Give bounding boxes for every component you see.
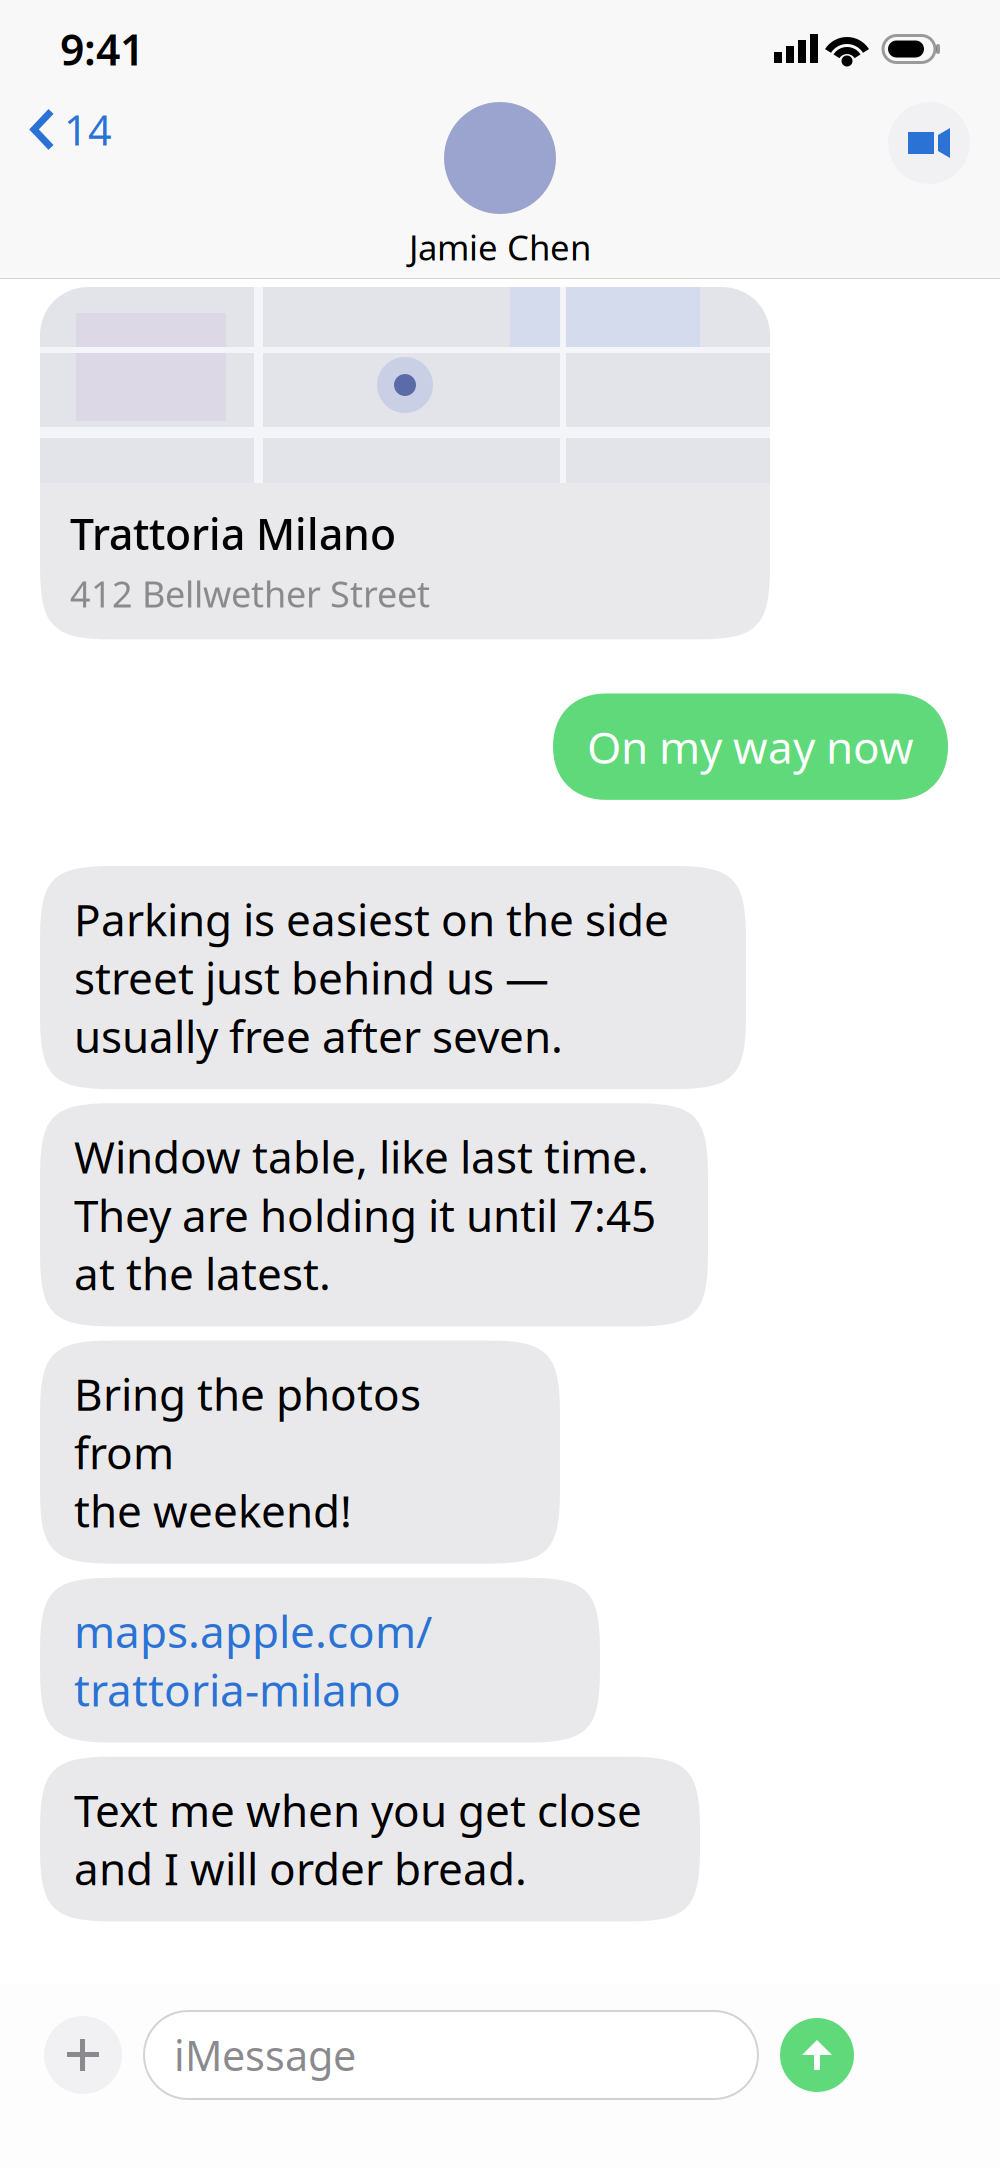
button[interactable]: Add attachment	[44, 2016, 122, 2094]
button[interactable]: FaceTime	[800, 102, 970, 274]
staticText: On my way now	[587, 717, 914, 776]
staticText: Jamie Chen	[409, 224, 591, 270]
staticText: maps.apple.com/ trattoria-milano	[74, 1602, 432, 1719]
staticText: Parking is easiest on the side street ju…	[74, 890, 669, 1065]
staticText: Text me when you get close and I will or…	[74, 1781, 642, 1897]
staticText: 412 Bellwether Street	[70, 570, 430, 617]
staticText: Window table, like last time. They are h…	[74, 1127, 656, 1302]
staticText: 9:41	[60, 21, 144, 77]
staticText: 14	[64, 102, 112, 157]
staticText: Bring the photos from the weekend!	[74, 1364, 421, 1540]
button[interactable]: Send	[780, 2018, 854, 2092]
button[interactable]: Back to Messages	[30, 102, 200, 274]
staticText: iMessage	[174, 2028, 356, 2082]
button[interactable]: Jamie Chen	[409, 102, 591, 270]
staticText: Trattoria Milano	[70, 505, 396, 562]
